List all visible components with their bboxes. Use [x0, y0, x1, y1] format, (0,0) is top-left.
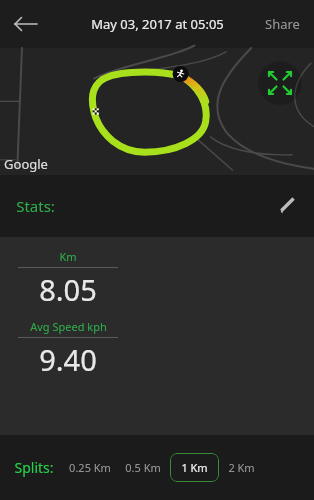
button[interactable]: Share	[255, 7, 310, 41]
button[interactable]: 2 Km	[225, 453, 258, 482]
staticText: May 03, 2017 at 05:05	[91, 15, 224, 33]
staticText: 8.05	[39, 270, 97, 309]
staticText: Google	[4, 155, 48, 173]
staticText: 0.25 Km	[69, 460, 111, 475]
button[interactable]: Edit stats	[268, 188, 304, 224]
staticText: Stats:	[16, 196, 55, 216]
button[interactable]: 0.25 Km	[66, 453, 114, 482]
button[interactable]: Back	[6, 4, 46, 44]
button[interactable]: 1 Km	[170, 453, 219, 482]
staticText: 1 Km	[181, 460, 208, 475]
staticText: Splits:	[14, 458, 54, 477]
staticText: Avg Speed kph	[30, 319, 107, 334]
staticText: Km	[59, 249, 77, 264]
staticText: Share	[265, 15, 300, 33]
staticText: 0.5 Km	[125, 460, 161, 475]
button[interactable]: 0.5 Km	[122, 453, 164, 482]
button[interactable]: Expand map	[258, 61, 302, 105]
staticText: 9.40	[39, 340, 97, 379]
staticText: 2 Km	[228, 460, 255, 475]
